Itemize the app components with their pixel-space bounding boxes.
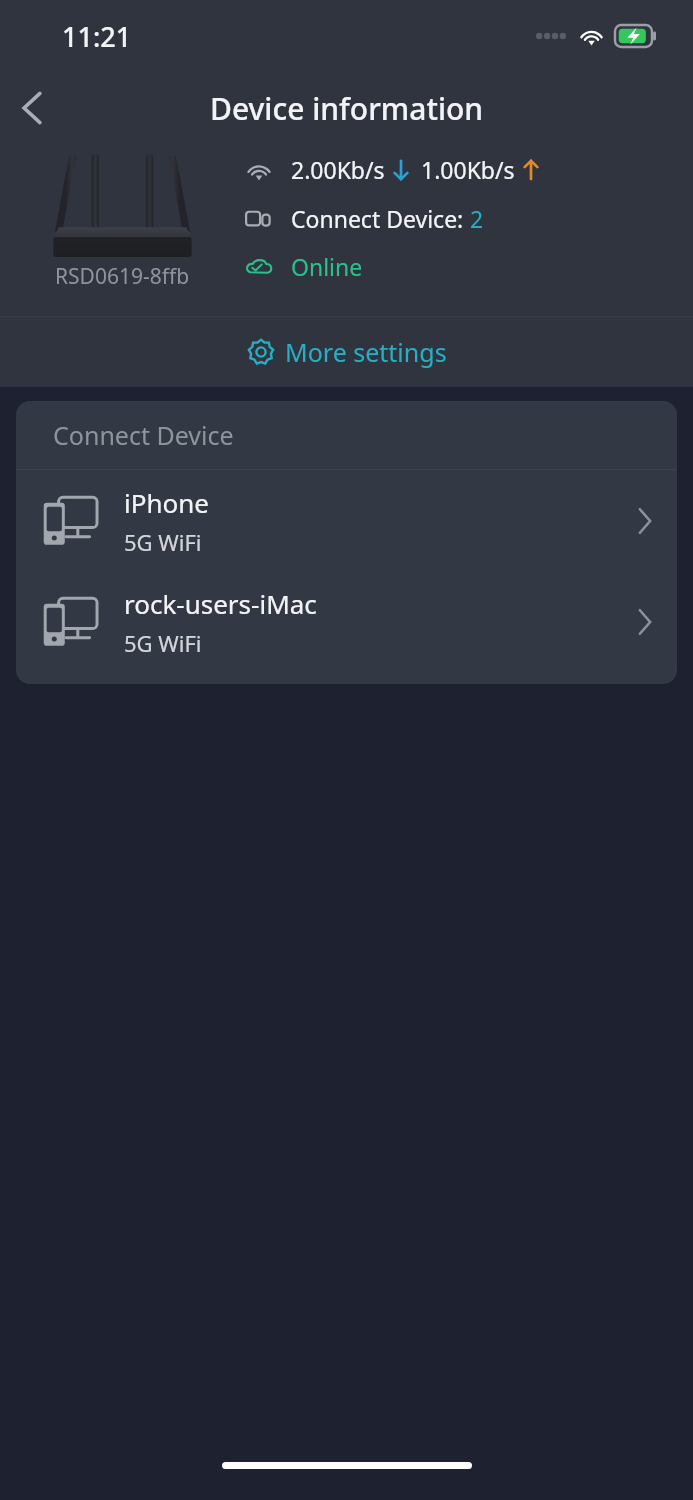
button[interactable]: iPhone bbox=[16, 470, 677, 571]
staticText: Connect Device: bbox=[291, 203, 470, 234]
staticText: 2 bbox=[470, 203, 484, 234]
button[interactable]: Back bbox=[0, 76, 64, 140]
staticText: 5G WiFi bbox=[124, 628, 202, 658]
staticText: 2.00Kb/s bbox=[291, 154, 385, 185]
button[interactable]: rock-users-iMac bbox=[16, 571, 677, 672]
staticText: Online bbox=[291, 251, 363, 282]
staticText: Connect Device bbox=[53, 418, 234, 452]
staticText: Device information bbox=[210, 88, 484, 129]
button[interactable]: More settings bbox=[0, 317, 693, 387]
staticText: 1.00Kb/s bbox=[421, 154, 515, 185]
staticText: 5G WiFi bbox=[124, 527, 202, 557]
staticText: RSD0619-8ffb bbox=[55, 262, 190, 291]
staticText: 11:21 bbox=[62, 18, 132, 55]
staticText: rock-users-iMac bbox=[124, 586, 317, 621]
staticText: iPhone bbox=[124, 485, 209, 520]
staticText: More settings bbox=[285, 335, 447, 369]
